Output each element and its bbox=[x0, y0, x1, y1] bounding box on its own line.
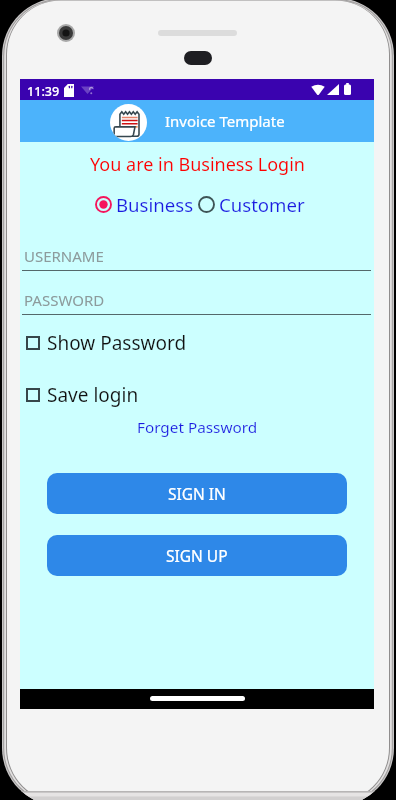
button[interactable]: Save login bbox=[26, 382, 139, 408]
other: Home bbox=[150, 696, 245, 701]
staticText: SIGN IN bbox=[168, 483, 226, 504]
button[interactable]: Show Password bbox=[26, 330, 187, 356]
staticText: SIGN UP bbox=[166, 545, 228, 566]
staticText: Customer bbox=[219, 192, 305, 217]
button[interactable]: PASSWORD bbox=[22, 290, 371, 315]
staticText: Show Password bbox=[47, 330, 187, 356]
button[interactable]: SIGN IN bbox=[47, 473, 347, 514]
button[interactable]: Business bbox=[95, 192, 194, 217]
staticText: You are in Business Login bbox=[90, 152, 305, 177]
staticText: USERNAME bbox=[24, 246, 104, 266]
staticText: PASSWORD bbox=[24, 290, 105, 310]
staticText: Save login bbox=[47, 382, 139, 408]
button[interactable]: USERNAME bbox=[22, 246, 371, 271]
staticText: Forget Password bbox=[137, 417, 258, 438]
staticText: Business bbox=[116, 192, 194, 217]
button[interactable]: Customer bbox=[198, 192, 305, 217]
button[interactable]: Forget Password bbox=[131, 415, 264, 440]
button[interactable]: SIGN UP bbox=[47, 535, 347, 576]
staticText: Invoice Template bbox=[165, 111, 285, 131]
staticText: 11:39 bbox=[27, 83, 60, 100]
